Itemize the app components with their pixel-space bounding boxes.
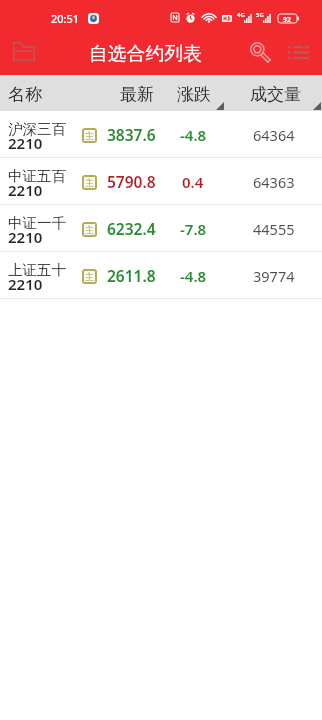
button[interactable]: 最新 xyxy=(110,75,168,111)
staticText: 0.4 xyxy=(182,172,204,192)
staticText: 成交量 xyxy=(250,84,301,105)
staticText: 64364 xyxy=(253,125,295,145)
staticText: 39774 xyxy=(253,266,295,286)
staticText: 64363 xyxy=(253,172,295,192)
staticText: 3837.6 xyxy=(107,124,156,145)
staticText: -7.8 xyxy=(180,219,207,239)
staticText: 6232.4 xyxy=(107,218,156,239)
staticText: -4.8 xyxy=(180,266,207,286)
staticText: 4G xyxy=(237,11,245,19)
button[interactable]: 成交量 xyxy=(240,75,322,111)
staticText: -4.8 xyxy=(180,125,207,145)
button[interactable]: 中证五百 xyxy=(0,158,322,205)
staticText: 2210 xyxy=(8,227,43,247)
staticText: 上证五十 xyxy=(8,261,66,279)
staticText: 沪深三百 xyxy=(8,120,66,138)
staticText: 名称 xyxy=(8,84,42,105)
staticText: 中证一千 xyxy=(8,214,66,232)
staticText: 涨跌 xyxy=(177,84,211,105)
staticText: 主 xyxy=(85,130,94,141)
staticText: 主 xyxy=(85,177,94,188)
button[interactable]: 沪深三百 xyxy=(0,111,322,158)
button[interactable]: List options xyxy=(279,29,317,75)
staticText: 主 xyxy=(85,224,94,235)
staticText: 主 xyxy=(85,271,94,282)
button[interactable]: Folder xyxy=(2,29,46,73)
staticText: 2210 xyxy=(8,274,43,294)
staticText: 自选合约列表 xyxy=(89,42,202,66)
staticText: 5790.8 xyxy=(107,171,156,192)
staticText: 92 xyxy=(283,15,292,24)
staticText: 2611.8 xyxy=(107,265,156,286)
button[interactable]: 涨跌 xyxy=(172,75,230,111)
staticText: 20:51 xyxy=(51,11,80,26)
staticText: 最新 xyxy=(120,84,154,105)
staticText: 44555 xyxy=(253,219,295,239)
button[interactable]: 中证一千 xyxy=(0,205,322,252)
button[interactable]: 上证五十 xyxy=(0,252,322,299)
button[interactable]: Search xyxy=(241,29,279,75)
staticText: 2210 xyxy=(8,180,43,200)
button[interactable]: 名称 xyxy=(0,75,100,111)
staticText: 5G xyxy=(256,11,264,19)
staticText: 2210 xyxy=(8,133,43,153)
staticText: 中证五百 xyxy=(8,167,66,185)
